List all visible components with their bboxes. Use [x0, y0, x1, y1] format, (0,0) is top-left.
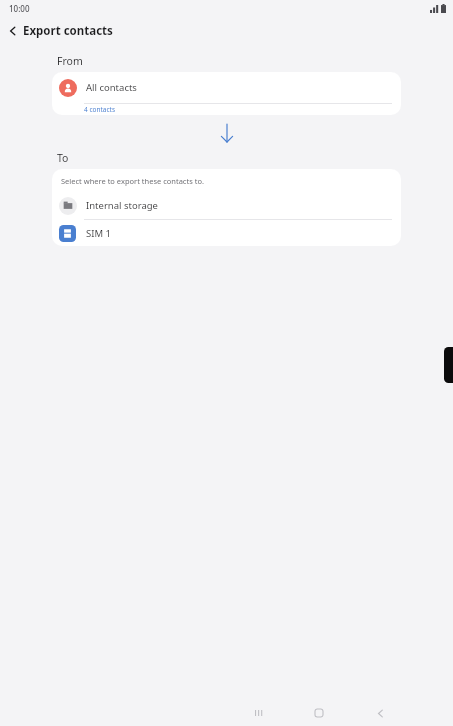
- staticText: 4 contacts: [84, 105, 116, 114]
- button[interactable]: Back: [2, 20, 24, 42]
- button[interactable]: Back: [369, 702, 391, 724]
- staticText: Export contacts: [23, 23, 113, 39]
- button[interactable]: Internal storage: [52, 192, 401, 219]
- button[interactable]: All contacts: [52, 72, 401, 115]
- button[interactable]: SIM 1: [52, 220, 401, 246]
- staticText: All contacts: [86, 81, 137, 94]
- button[interactable]: Recents: [248, 702, 270, 724]
- staticText: Internal storage: [86, 199, 158, 212]
- staticText: 10:00: [9, 3, 30, 14]
- button[interactable]: Home: [308, 702, 330, 724]
- staticText: SIM 1: [86, 227, 111, 240]
- staticText: To: [57, 151, 69, 165]
- staticText: From: [57, 54, 83, 68]
- staticText: Select where to export these contacts to…: [61, 176, 204, 186]
